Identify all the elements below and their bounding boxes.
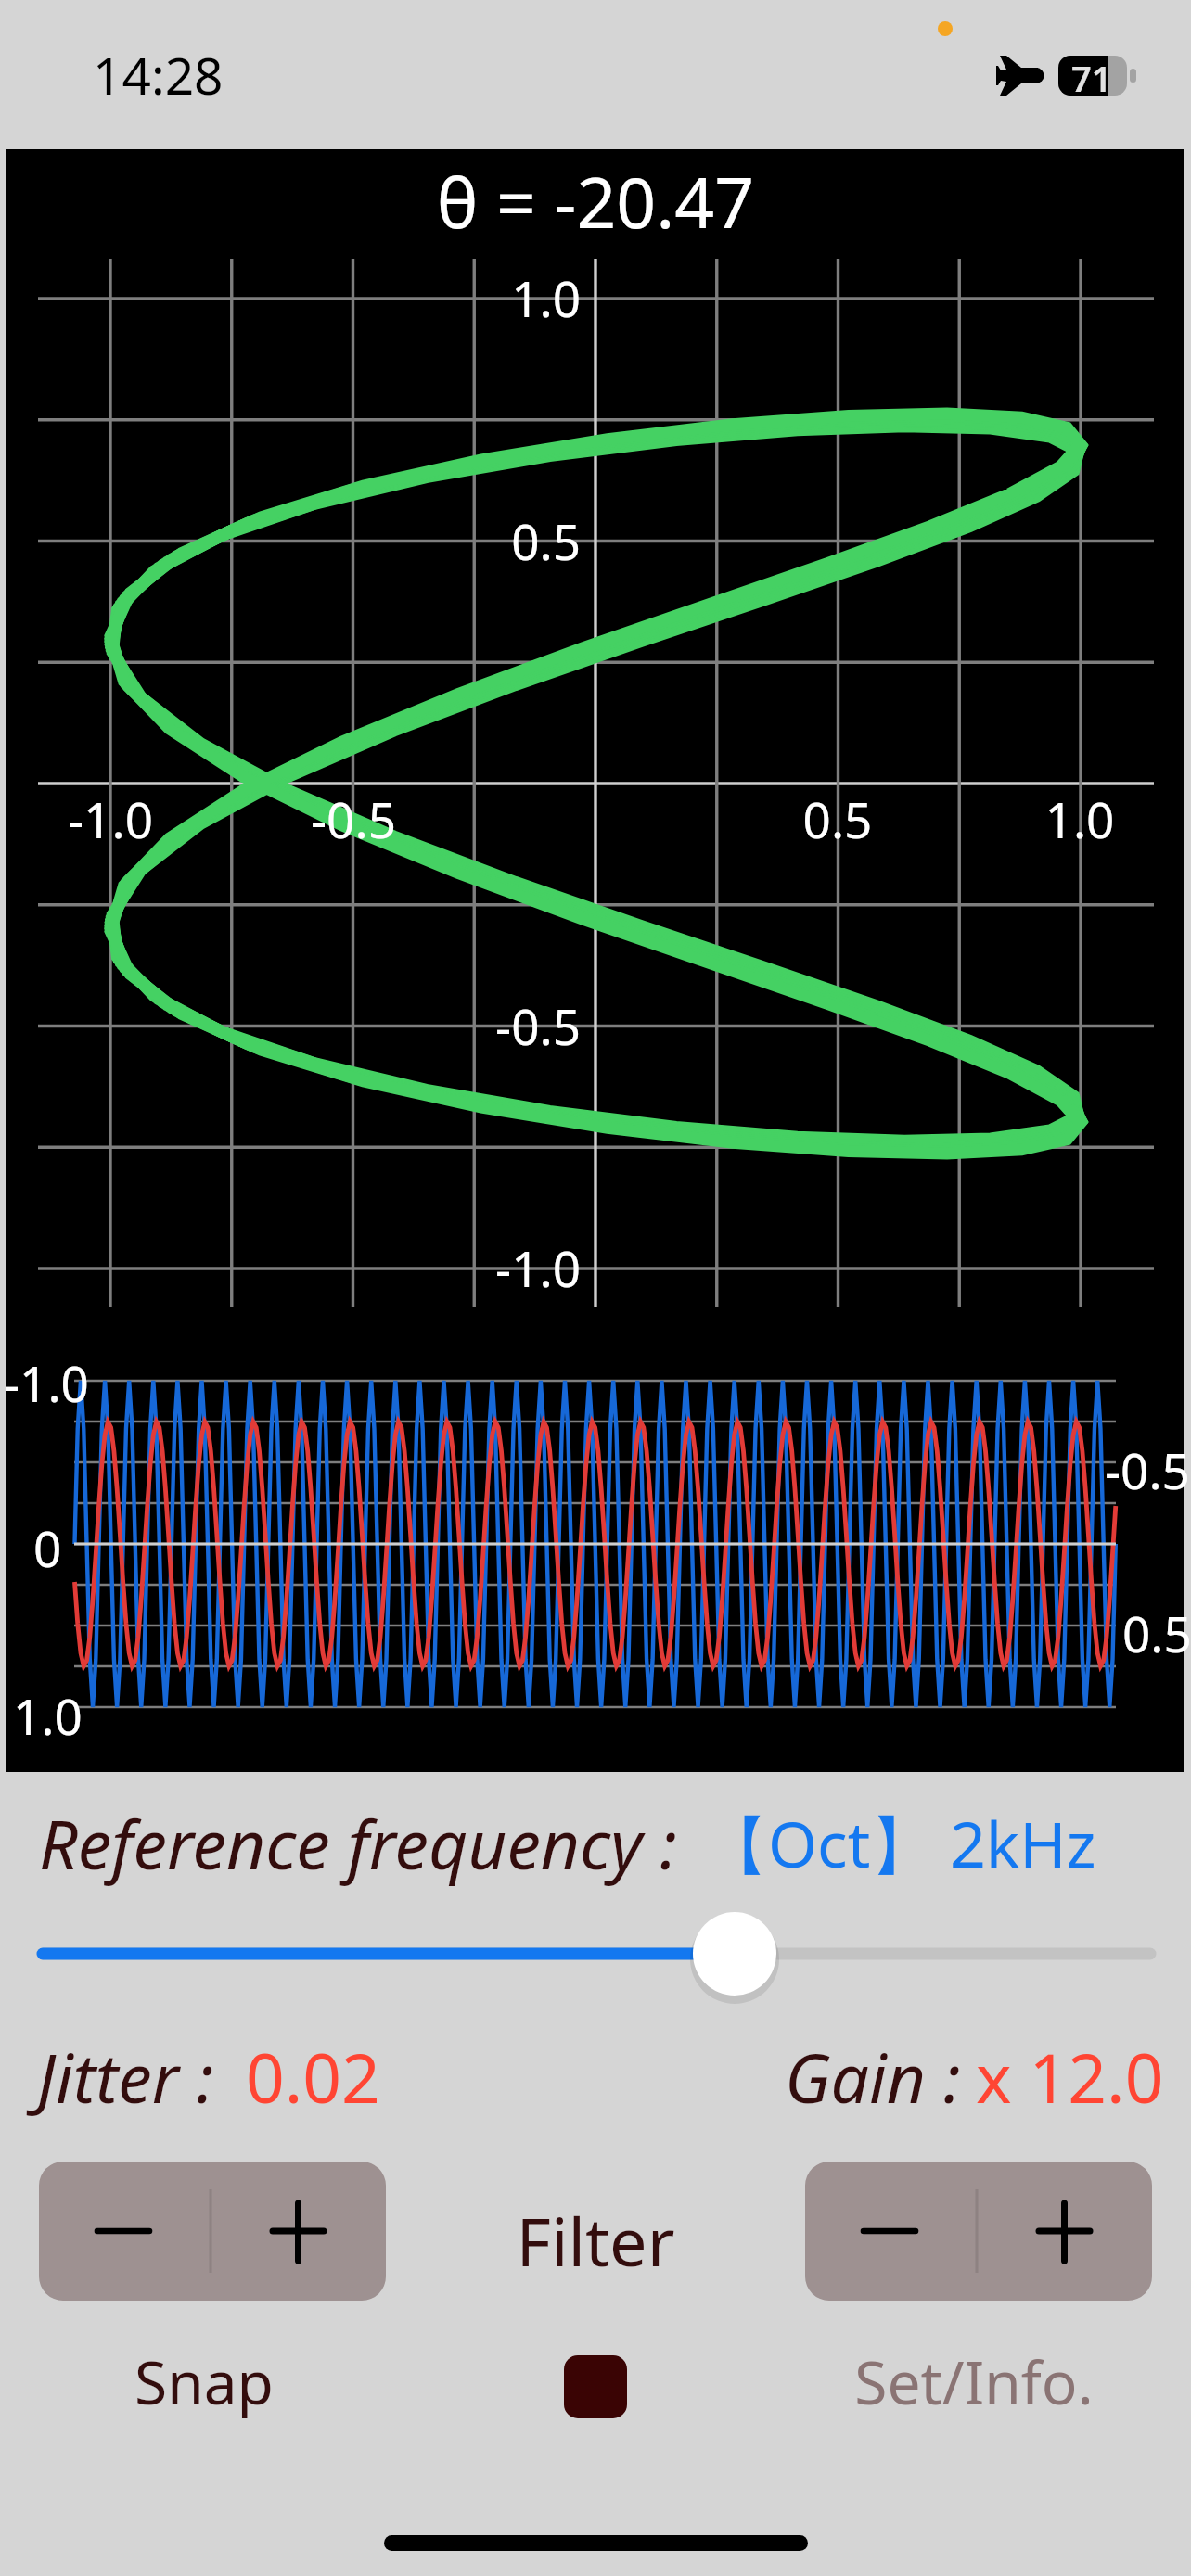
staticText: 0.5: [726, 785, 949, 852]
staticText: Filter: [410, 2195, 781, 2286]
staticText: Reference frequency :: [39, 1797, 677, 1889]
staticText: -0.5: [242, 785, 465, 852]
staticText: 0.5: [1122, 1600, 1191, 1666]
button[interactable]: Trace colour: [564, 2355, 627, 2418]
staticText: 0: [33, 1514, 62, 1581]
button[interactable]: Decrease: [805, 2162, 977, 2301]
button[interactable]: Increase: [211, 2162, 386, 2301]
staticText: Snap: [121, 2341, 288, 2422]
button[interactable]: [0, 1910, 1191, 1999]
button[interactable]: Increase: [977, 2162, 1152, 2301]
staticText: 71: [1071, 54, 1112, 102]
staticText: -1.0: [0, 785, 222, 852]
staticText: 0.5: [377, 507, 581, 574]
staticText: x 12.0: [976, 2031, 1164, 2123]
staticText: -0.5: [1105, 1436, 1190, 1503]
staticText: Set/Info.: [835, 2341, 1113, 2422]
staticText: 1.0: [377, 264, 581, 331]
staticText: θ = -20.47: [0, 154, 1191, 249]
staticText: 1.0: [13, 1682, 83, 1749]
staticText: Jitter :: [37, 2031, 214, 2123]
staticText: -0.5: [377, 992, 581, 1059]
button[interactable]: Snap: [121, 2341, 288, 2434]
button[interactable]: Decrease: [39, 2162, 211, 2301]
staticText: 14:28: [93, 40, 224, 109]
staticText: 【Oct】 2kHz: [705, 1800, 1096, 1886]
staticText: 0.02: [246, 2031, 380, 2123]
staticText: -1.0: [377, 1234, 581, 1301]
button[interactable]: Set/Info.: [835, 2341, 1113, 2434]
staticText: 1.0: [968, 785, 1191, 852]
staticText: Gain :: [785, 2031, 961, 2123]
staticText: -1.0: [4, 1349, 89, 1416]
